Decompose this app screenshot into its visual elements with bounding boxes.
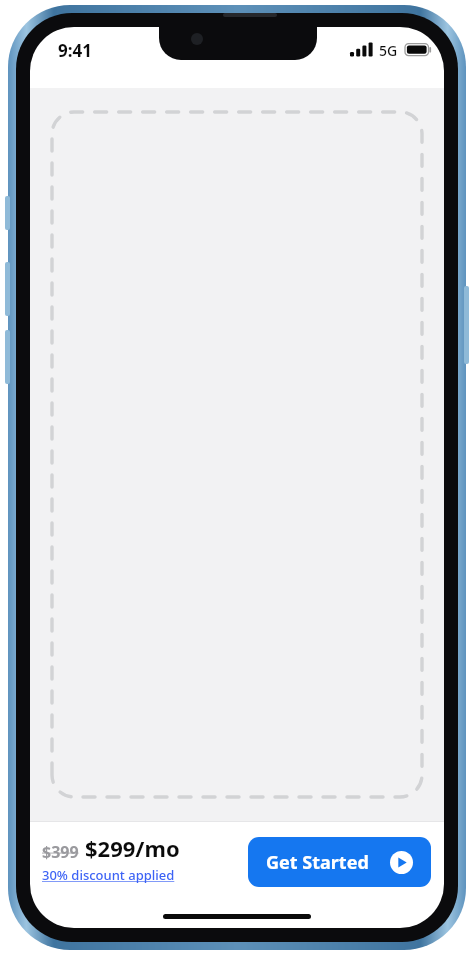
staticText: 30% discount applied <box>42 866 175 884</box>
staticText: 5G <box>379 41 398 60</box>
other: Play <box>390 851 413 874</box>
button[interactable]: 30% discount applied <box>42 866 175 884</box>
staticText: $399 <box>42 841 79 863</box>
staticText: Get Started <box>266 850 369 875</box>
staticText: $299/mo <box>85 833 180 863</box>
button[interactable]: Get Started <box>248 837 431 887</box>
staticText: 9:41 <box>58 39 92 62</box>
